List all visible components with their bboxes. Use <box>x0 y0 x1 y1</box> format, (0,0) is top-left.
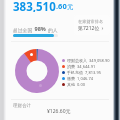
staticText: 超过全国 <box>13 27 33 33</box>
staticText: .60 <box>56 1 67 11</box>
staticText: 缴费 1,046.74 <box>67 76 93 81</box>
staticText: 消费 34,644.91 <box>67 64 96 69</box>
staticText: 理财合计 <box>13 103 31 109</box>
staticText: 第7212位 <box>78 25 100 32</box>
button[interactable]: 消费 34,644.91 <box>62 63 96 69</box>
staticText: 元 <box>67 3 74 11</box>
staticText: 383,510 <box>13 0 56 12</box>
staticText: 理财总收入 349,058.90 <box>67 58 110 63</box>
button[interactable]: ¥126.60元 <box>47 108 71 115</box>
button[interactable]: 在家财富排名 <box>74 15 110 35</box>
button[interactable]: 手机充值 7,813.95 <box>62 69 101 75</box>
staticText: 的人 <box>48 27 58 33</box>
staticText: 其他 0.00 <box>67 82 86 87</box>
button[interactable]: 理财总收入 349,058.90 <box>62 57 110 63</box>
staticText: ¥126.60元 <box>47 108 71 115</box>
button[interactable]: 缴费 1,046.74 <box>62 75 93 81</box>
button[interactable]: 其他 0.00 <box>62 81 86 87</box>
staticText: 手机充值 7,813.95 <box>67 70 101 75</box>
staticText: 98% <box>33 25 48 33</box>
button[interactable]: 理财合计 <box>13 103 31 109</box>
staticText: 在家财富排名 <box>78 19 104 24</box>
